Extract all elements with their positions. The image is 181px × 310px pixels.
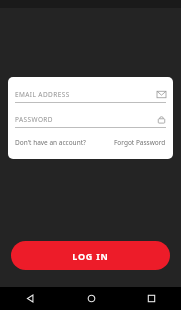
staticText: LOG IN	[72, 250, 109, 262]
button[interactable]: EMAIL ADDRESS	[15, 90, 166, 102]
button[interactable]: LOG IN	[11, 241, 170, 270]
button[interactable]: Forgot Password	[114, 138, 166, 147]
other: Password	[157, 115, 166, 124]
other: Email	[157, 90, 166, 99]
button[interactable]: Back	[0, 287, 61, 310]
button[interactable]: Home	[61, 287, 121, 310]
staticText: PASSWORD	[15, 115, 53, 124]
staticText: Don't have an account?	[15, 138, 86, 147]
button[interactable]: PASSWORD	[15, 115, 166, 127]
button[interactable]: Don't have an account?	[15, 138, 86, 147]
staticText: EMAIL ADDRESS	[15, 90, 70, 99]
staticText: Forgot Password	[114, 138, 166, 147]
button[interactable]: Recent apps	[121, 287, 181, 310]
